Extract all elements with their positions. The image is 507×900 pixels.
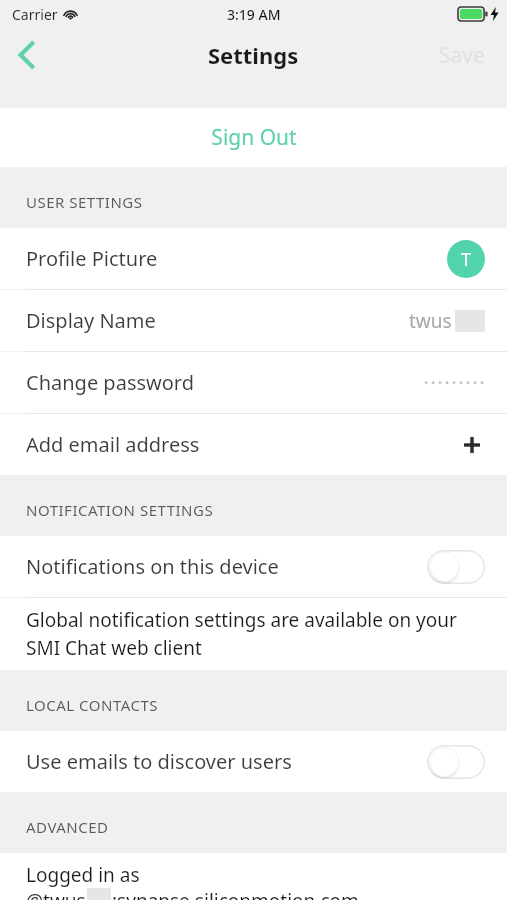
- staticText: Add email address: [26, 431, 459, 458]
- button[interactable]: Change password: [0, 352, 507, 413]
- staticText: 3:19 AM: [227, 5, 281, 24]
- staticText: Use emails to discover users: [26, 748, 427, 775]
- button[interactable]: Notifications on this device: [0, 536, 507, 597]
- staticText: Display Name: [26, 307, 409, 334]
- staticText: Settings: [208, 40, 299, 70]
- button[interactable]: Use emails to discover users: [427, 745, 485, 779]
- staticText: Profile Picture: [26, 245, 447, 272]
- staticText: Sign Out: [211, 123, 297, 152]
- button[interactable]: Add: [459, 432, 485, 458]
- staticText: Notifications on this device: [26, 553, 427, 580]
- staticText: • • • • • • • • •: [424, 375, 485, 390]
- button[interactable]: Use emails to discover users: [0, 731, 507, 792]
- staticText: USER SETTINGS: [26, 192, 143, 212]
- staticText: twus: [409, 308, 452, 334]
- staticText: Logged in as: [26, 862, 140, 888]
- staticText: @twus: [26, 888, 86, 900]
- staticText: Global notification settings are availab…: [26, 607, 481, 661]
- button[interactable]: Sign Out: [0, 108, 507, 167]
- staticText: ADVANCED: [26, 817, 109, 837]
- staticText: :synapse.siliconmotion.com: [112, 888, 359, 900]
- button[interactable]: Back: [0, 28, 54, 82]
- button[interactable]: Notifications on this device: [427, 550, 485, 584]
- staticText: LOCAL CONTACTS: [26, 695, 159, 715]
- staticText: NOTIFICATION SETTINGS: [26, 500, 214, 520]
- button[interactable]: Profile Picture: [0, 228, 507, 289]
- staticText: Change password: [26, 369, 424, 396]
- button[interactable]: Add email address: [0, 414, 507, 475]
- button[interactable]: Display Name: [0, 290, 507, 351]
- staticText: T: [461, 247, 472, 272]
- staticText: Carrier: [12, 5, 58, 24]
- staticText: Save: [439, 41, 485, 70]
